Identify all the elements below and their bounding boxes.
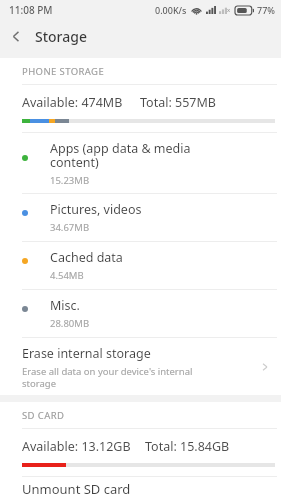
button[interactable]: Erase internal storage — [0, 338, 281, 395]
staticText: Pictures, videos — [50, 201, 142, 218]
staticText: Erase internal storage — [22, 345, 151, 362]
staticText: Available: 13.12GB — [22, 438, 131, 455]
staticText: 15.23MB — [50, 174, 90, 187]
staticText: Erase all data on your device's internal… — [22, 365, 193, 389]
button[interactable]: Back — [0, 20, 32, 52]
staticText: PHONE STORAGE — [22, 65, 105, 78]
button[interactable]: Apps (app data & media content) — [0, 133, 281, 193]
staticText: Unmount SD card — [22, 480, 131, 498]
staticText: Cached data — [50, 249, 123, 266]
staticText: Available: 474MB — [22, 94, 123, 111]
staticText: Total: 557MB — [140, 94, 216, 111]
button[interactable]: Cached data — [0, 242, 281, 289]
staticText: 28.80MB — [50, 317, 90, 330]
staticText: 11:08 PM — [9, 3, 53, 17]
staticText: Storage — [35, 27, 87, 46]
staticText: 4.54MB — [50, 269, 84, 282]
staticText: SD CARD — [22, 409, 65, 422]
staticText: 77% — [257, 4, 275, 16]
staticText: 34.67MB — [50, 221, 90, 234]
staticText: Apps (app data & media content) — [50, 140, 191, 171]
button[interactable]: Unmount SD card — [0, 477, 281, 500]
staticText: Total: 15.84GB — [145, 438, 230, 455]
staticText: Misc. — [50, 297, 80, 314]
staticText: 0.00K/s — [155, 4, 187, 16]
staticText: x — [227, 6, 231, 14]
button[interactable]: Pictures, videos — [0, 194, 281, 241]
button[interactable]: Misc. — [0, 290, 281, 337]
